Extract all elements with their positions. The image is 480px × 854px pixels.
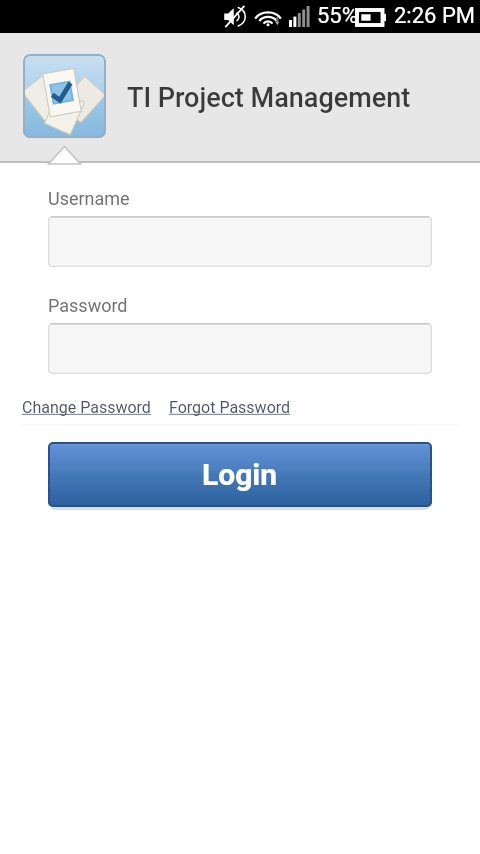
staticText: Forgot Password bbox=[169, 398, 291, 417]
staticText: Change Password bbox=[22, 398, 151, 417]
other: TI Project Management icon bbox=[23, 54, 106, 138]
button[interactable]: Username input bbox=[48, 216, 432, 267]
button[interactable]: Forgot Password bbox=[169, 398, 291, 417]
staticText: 55% bbox=[317, 3, 358, 29]
button[interactable]: Login bbox=[48, 442, 432, 507]
staticText: 2:26 PM bbox=[394, 3, 475, 29]
staticText: TI Project Management bbox=[127, 82, 411, 114]
staticText: Login bbox=[202, 457, 278, 492]
button[interactable]: Password input bbox=[48, 323, 432, 374]
staticText: Password bbox=[48, 295, 128, 316]
button[interactable]: Change Password bbox=[22, 398, 151, 417]
staticText: Username bbox=[48, 188, 130, 209]
